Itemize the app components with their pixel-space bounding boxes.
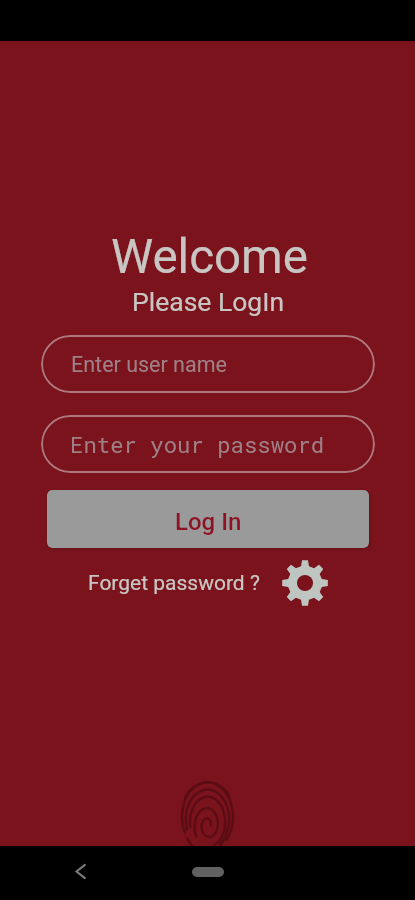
staticText: Forget password ? [88, 571, 260, 596]
button[interactable]: Enter user name [41, 335, 375, 393]
staticText: Welcome [111, 229, 308, 285]
button[interactable]: Forget password ? [88, 560, 260, 606]
button[interactable]: Settings [282, 560, 328, 606]
button[interactable]: Log In [47, 490, 369, 548]
button[interactable]: Back [58, 850, 101, 893]
staticText: Enter user name [71, 352, 227, 377]
button[interactable]: Home [192, 867, 224, 877]
staticText: Enter your password [70, 430, 325, 459]
button[interactable]: Enter your password [41, 415, 375, 473]
staticText: Please LogIn [132, 286, 285, 317]
staticText: Log In [175, 508, 242, 536]
